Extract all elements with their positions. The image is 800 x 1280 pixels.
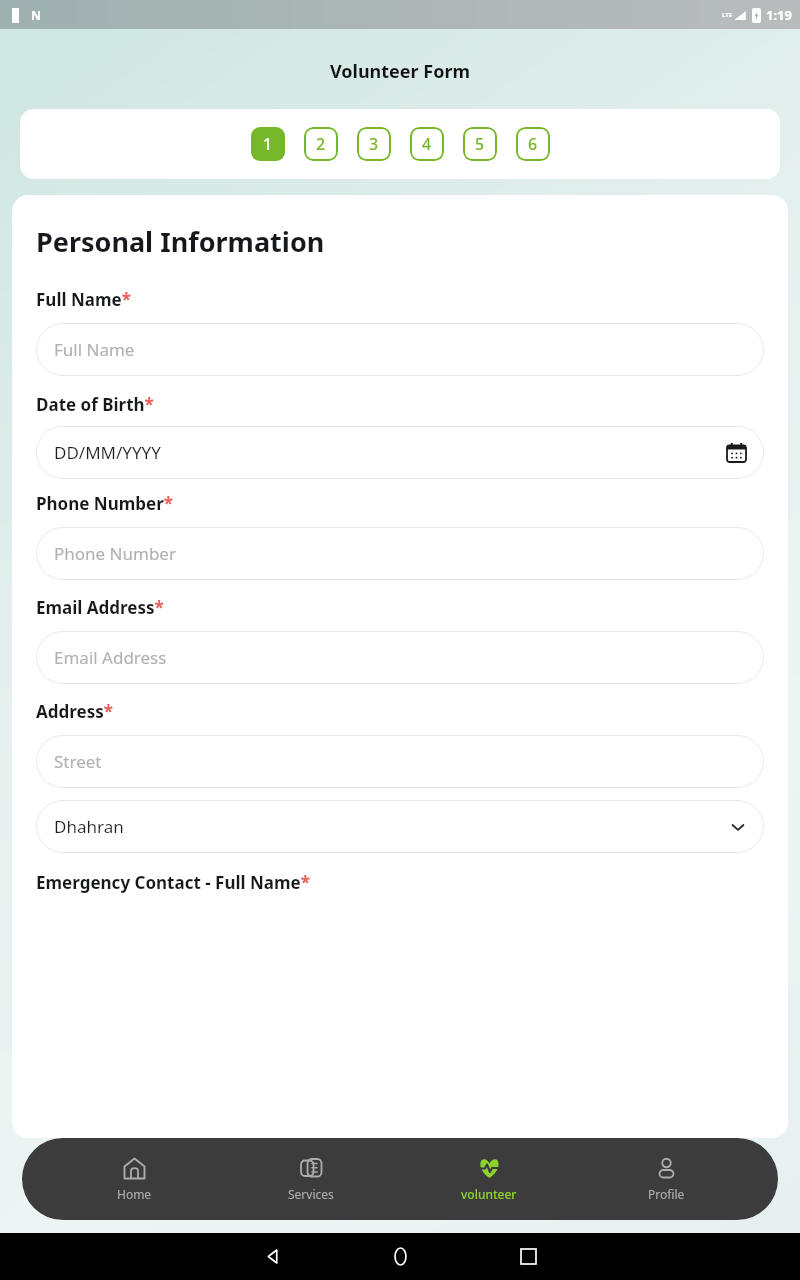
button[interactable]: 3 — [357, 127, 391, 161]
button[interactable]: 6 — [516, 127, 550, 161]
button[interactable]: 2 — [304, 127, 338, 161]
button[interactable]: 4 — [410, 127, 444, 161]
staticText: Full Name* — [36, 288, 131, 311]
staticText: N — [31, 7, 41, 23]
button[interactable]: Full Name — [36, 323, 764, 376]
button[interactable]: Back — [208, 1233, 336, 1280]
other: Open dropdown — [730, 819, 746, 835]
other: Pick date — [727, 443, 746, 462]
staticText: Services — [288, 1186, 334, 1202]
staticText: Full Name — [54, 338, 746, 361]
staticText: 3 — [369, 133, 379, 155]
staticText: Home — [117, 1186, 152, 1202]
button[interactable]: Phone Number — [36, 527, 764, 580]
staticText: LTE — [722, 11, 733, 19]
staticText: 1 — [263, 133, 273, 155]
staticText: Date of Birth* — [36, 393, 154, 416]
button[interactable]: Home — [69, 1138, 199, 1220]
staticText: 1:19 — [766, 6, 792, 24]
button[interactable]: Recent apps — [464, 1233, 592, 1280]
staticText: Email Address — [54, 646, 746, 669]
staticText: Profile — [648, 1186, 685, 1202]
staticText: Phone Number* — [36, 492, 174, 515]
staticText: Personal Information — [36, 223, 325, 260]
staticText: Address* — [36, 700, 113, 723]
staticText: Street — [54, 750, 746, 773]
staticText: 2 — [316, 133, 326, 155]
button[interactable]: Email Address — [36, 631, 764, 684]
staticText: 4 — [422, 133, 432, 155]
staticText: DD/MM/YYYY — [54, 441, 727, 464]
staticText: Dhahran — [54, 815, 730, 838]
staticText: 5 — [475, 133, 485, 155]
staticText: volunteer — [461, 1186, 517, 1202]
staticText: Email Address* — [36, 596, 164, 619]
staticText: Volunteer Form — [0, 59, 800, 84]
button[interactable]: Profile — [601, 1138, 731, 1220]
button[interactable]: DD/MM/YYYY — [36, 426, 764, 479]
button[interactable]: Dhahran — [36, 800, 764, 853]
staticText: 6 — [528, 133, 538, 155]
button[interactable]: Home — [336, 1233, 464, 1280]
button[interactable]: Street — [36, 735, 764, 788]
button[interactable]: 5 — [463, 127, 497, 161]
staticText: Emergency Contact - Full Name* — [36, 871, 310, 894]
button[interactable]: 1 — [251, 127, 285, 161]
staticText: Phone Number — [54, 542, 746, 565]
button[interactable]: volunteer — [424, 1138, 554, 1220]
button[interactable]: Services — [246, 1138, 376, 1220]
